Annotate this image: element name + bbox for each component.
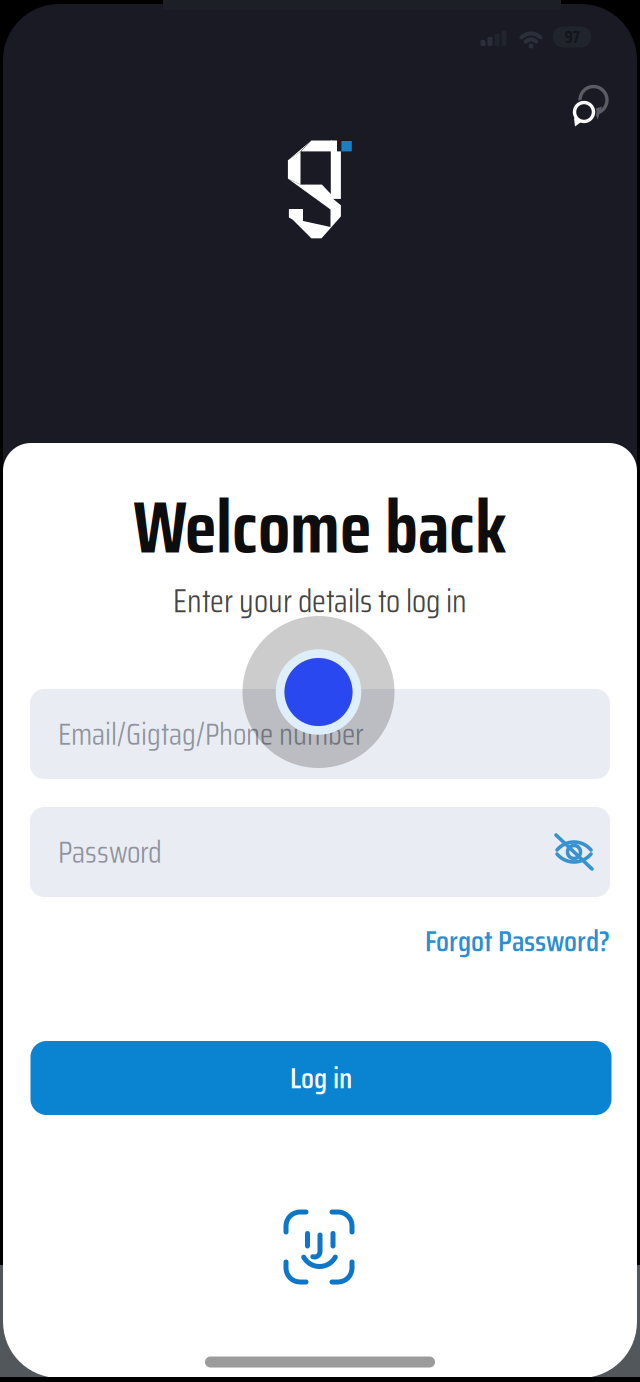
button[interactable]: Log in (30, 1041, 611, 1115)
staticText: Log in (290, 1055, 352, 1101)
staticText: Password (58, 828, 162, 876)
staticText: Welcome back (133, 469, 507, 585)
button[interactable]: Log in with Face ID (279, 1207, 359, 1287)
staticText: Email/Gigtag/Phone number (58, 710, 364, 758)
button[interactable]: Password (30, 807, 610, 897)
button[interactable]: Email/Gigtag/Phone number (30, 689, 610, 779)
staticText: Forgot Password? (425, 918, 610, 964)
button[interactable]: Forgot Password? (425, 918, 610, 964)
button[interactable]: Show password (548, 826, 600, 878)
staticText: Enter your details to log in (173, 576, 467, 626)
button[interactable]: Support chat (562, 78, 618, 134)
staticText: 97 (564, 23, 579, 51)
